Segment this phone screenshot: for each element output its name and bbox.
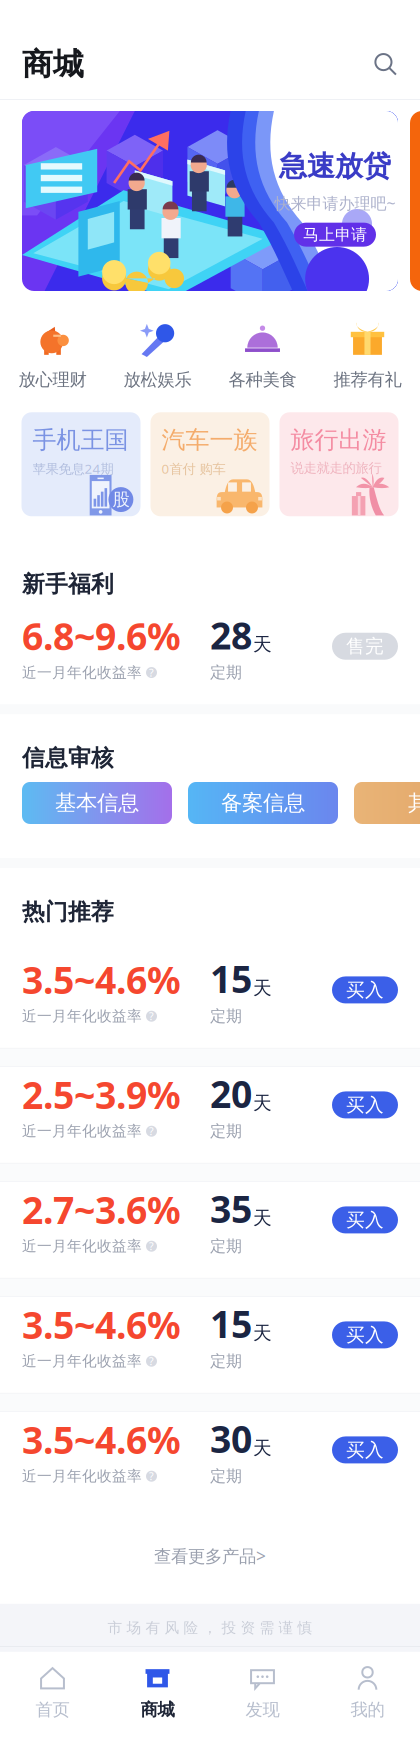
staticText: 汽车一族 [161,425,257,455]
staticText: ? [149,1469,154,1483]
staticText: 买入 [346,1093,384,1116]
staticText: 近一月年化收益率 [22,1467,142,1485]
staticText: 放松娱乐 [123,369,191,390]
button[interactable]: 放松娱乐 [105,321,210,390]
staticText: 放心理财 [18,369,86,390]
button[interactable]: 旅行出游 [279,412,398,516]
staticText: ? [149,665,154,680]
staticText: 首页 [35,1699,69,1720]
staticText: 35 [210,1184,252,1233]
button[interactable]: 3.5~4.6% [0,1297,420,1393]
staticText: 定期 [210,1006,242,1026]
staticText: 马上申请 [303,225,367,244]
staticText: 备案信息 [221,790,305,816]
staticText: 近一月年化收益率 [22,1352,142,1370]
button[interactable]: 基本信息 [22,782,172,824]
staticText: ? [149,1354,154,1368]
button[interactable]: 首页 [0,1653,105,1744]
staticText: 信息审核 [22,744,114,772]
staticText: 推荐有礼 [333,369,401,390]
button[interactable]: 放心理财 [0,321,105,390]
staticText: 3.5~4.6% [22,1300,181,1349]
staticText: 天 [253,1206,272,1229]
button[interactable]: 股 [21,412,140,516]
staticText: 定期 [210,663,242,682]
button[interactable]: 搜索 [372,51,398,77]
staticText: 各种美食 [228,369,296,390]
staticText: 0首付 购车 [161,460,225,477]
staticText: 定期 [210,1351,242,1371]
button[interactable]: 下一个活动 [410,111,420,291]
staticText: 定期 [210,1121,242,1141]
staticText: 新手福利 [22,570,114,598]
staticText: 定期 [210,1466,242,1486]
staticText: 买入 [346,1438,384,1461]
staticText: 近一月年化收益率 [22,1007,142,1025]
staticText: ? [149,1239,154,1253]
button[interactable]: 发现 [210,1653,315,1744]
staticText: 市 场 有 风 险 ， 投 资 需 谨 慎 [107,1619,312,1637]
button[interactable]: 其他 [354,782,420,824]
staticText: 股 [112,489,129,510]
staticText: 热门推荐 [22,898,114,926]
staticText: 苹果免息24期 [32,460,113,477]
staticText: 旅行出游 [290,425,386,455]
button[interactable]: 汽车一族 [150,412,269,516]
button[interactable]: 3.5~4.6% [0,952,420,1048]
staticText: 天 [253,1091,272,1114]
staticText: ? [149,1124,154,1138]
button[interactable]: 各种美食 [210,321,315,390]
button[interactable]: 3.5~4.6% [0,1412,420,1508]
staticText: 近一月年化收益率 [22,1237,142,1255]
staticText: 2.7~3.6% [22,1185,181,1234]
staticText: 快来申请办理吧~ [274,192,395,214]
staticText: 手机王国 [32,425,128,455]
staticText: 28 [210,610,252,660]
staticText: 其他 [408,790,420,816]
button[interactable]: 备案信息 [188,782,338,824]
staticText: 近一月年化收益率 [22,1122,142,1140]
staticText: 商城 [22,45,84,83]
staticText: 15 [210,1299,252,1348]
staticText: 查看更多产品> [154,1544,266,1567]
staticText: ? [149,1009,154,1023]
staticText: 发现 [245,1699,279,1720]
staticText: 30 [210,1414,252,1463]
staticText: 买入 [346,978,384,1001]
button[interactable]: 我的 [315,1653,420,1744]
staticText: 买入 [346,1323,384,1346]
button[interactable]: 2.7~3.6% [0,1182,420,1278]
staticText: 15 [210,954,252,1003]
staticText: 售完 [346,635,384,658]
staticText: 买入 [346,1208,384,1231]
button[interactable]: 急速放贷 [22,111,398,291]
staticText: 定期 [210,1236,242,1256]
staticText: 2.5~3.9% [22,1070,181,1119]
staticText: 3.5~4.6% [22,955,181,1004]
button[interactable]: 6.8~9.6% [0,608,420,704]
staticText: 近一月年化收益率 [22,663,142,681]
staticText: 急速放贷 [279,149,391,183]
staticText: 天 [253,976,272,999]
staticText: 说走就走的旅行 [290,460,381,476]
staticText: 6.8~9.6% [22,611,181,661]
button[interactable]: 2.5~3.9% [0,1067,420,1163]
staticText: 20 [210,1069,252,1118]
button[interactable]: 推荐有礼 [315,321,420,390]
staticText: 我的 [350,1699,384,1720]
staticText: 天 [253,1436,272,1459]
staticText: 基本信息 [55,790,139,816]
staticText: 商城 [140,1699,174,1720]
button[interactable]: 商城 [105,1653,210,1744]
staticText: 3.5~4.6% [22,1415,181,1464]
staticText: 天 [253,633,272,656]
staticText: 天 [253,1321,272,1344]
button[interactable]: 查看更多产品> [0,1508,420,1604]
